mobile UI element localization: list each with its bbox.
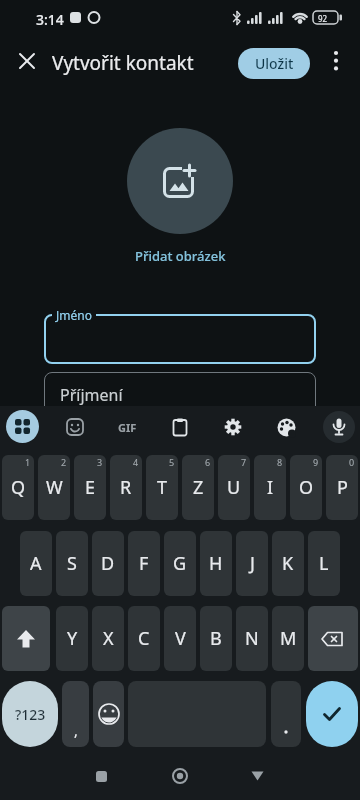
staticText: K [282,551,294,576]
button[interactable]: , [62,681,89,747]
staticText: C [138,626,150,651]
staticText: D [101,551,115,576]
staticText: Přidat obrázek [135,247,226,265]
staticText: ?123 [15,705,46,724]
staticText: 4 [133,456,139,468]
button[interactable]: N [236,606,268,671]
staticText: 6 [205,456,211,468]
staticText: M [280,626,297,651]
staticText: S [67,551,77,576]
button[interactable]: ?123 [2,681,58,747]
button[interactable]: 8 [254,455,286,520]
button[interactable]: G [164,531,196,596]
staticText: N [245,626,259,651]
button[interactable] [2,606,50,671]
staticText: 92 [318,13,328,24]
staticText: Z [193,475,204,500]
button[interactable]: J [236,531,268,596]
staticText: W [46,475,63,500]
staticText: L [319,551,329,576]
staticText: Y [67,626,78,651]
button[interactable] [217,411,249,443]
button[interactable] [6,40,48,82]
button[interactable]: M [272,606,304,671]
staticText: 0 [349,456,355,468]
button[interactable]: 1 [2,455,34,520]
staticText: A [30,551,42,576]
staticText: J [250,551,255,576]
staticText: , [74,721,78,740]
staticText: 9 [313,456,319,468]
staticText: Příjmení [60,384,123,406]
button[interactable]: D [92,531,124,596]
staticText: V [175,626,186,651]
staticText: T [157,475,168,500]
button[interactable]: C [128,606,160,671]
staticText: 5 [169,456,175,468]
button[interactable]: S [56,531,88,596]
button[interactable] [44,314,316,364]
button[interactable] [271,681,301,747]
staticText: R [120,475,132,500]
button[interactable] [93,681,124,747]
button[interactable]: L [308,531,340,596]
button[interactable] [308,606,358,671]
staticText: 3 [97,456,103,468]
button[interactable] [270,411,302,443]
staticText: H [209,551,223,576]
button[interactable]: 7 [218,455,250,520]
staticText: Q [11,475,26,500]
button[interactable]: 6 [182,455,214,520]
button[interactable] [323,411,355,443]
button[interactable] [164,411,196,443]
button[interactable] [318,43,354,79]
button[interactable] [6,410,39,443]
staticText: 7 [241,456,247,468]
button[interactable] [306,681,358,747]
staticText: Jméno [56,307,92,323]
button[interactable]: 3 [74,455,106,520]
staticText: E [85,475,96,500]
button[interactable]: X [92,606,124,671]
button[interactable] [44,372,316,422]
button[interactable]: GIF [111,411,143,443]
button[interactable]: Přidat obrázek [110,240,250,272]
staticText: F [139,551,149,576]
button[interactable]: V [164,606,196,671]
button[interactable] [127,128,233,234]
button[interactable]: A [20,531,52,596]
button[interactable]: Y [56,606,88,671]
button[interactable] [235,758,279,794]
staticText: Vytvořit kontakt [52,50,194,76]
staticText: P [337,475,348,500]
button[interactable]: 0 [326,455,358,520]
button[interactable]: 5 [146,455,178,520]
staticText: Uložit [255,54,294,73]
button[interactable]: H [200,531,232,596]
staticText: U [227,475,241,500]
button[interactable]: 2 [38,455,70,520]
button[interactable]: Uložit [238,48,310,79]
staticText: 3:14 [36,10,64,29]
staticText: G [173,551,187,576]
staticText: O [299,475,314,500]
button[interactable] [79,758,123,794]
staticText: 8 [277,456,283,468]
button[interactable] [158,758,202,794]
staticText: X [103,626,114,651]
staticText: I [267,475,274,500]
button[interactable]: 9 [290,455,322,520]
button[interactable] [59,411,91,443]
button[interactable]: K [272,531,304,596]
button[interactable]: B [200,606,232,671]
staticText: B [210,626,222,651]
staticText: GIF [118,420,137,435]
button[interactable]: 4 [110,455,142,520]
staticText: 2 [61,456,67,468]
button[interactable]: F [128,531,160,596]
staticText: 1 [25,456,31,468]
